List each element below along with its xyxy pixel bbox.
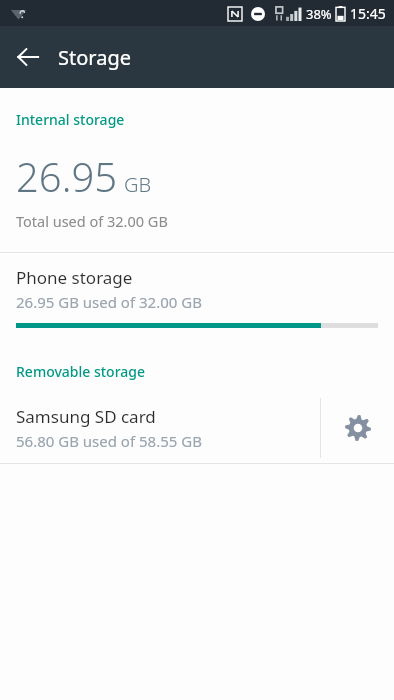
staticText: 26.95 GB used of 32.00 GB (16, 292, 202, 312)
staticText: 15:45 (350, 4, 386, 23)
staticText: Samsung SD card (16, 405, 156, 428)
button[interactable]: Settings (321, 393, 394, 463)
button[interactable]: Phone storage (0, 253, 394, 340)
staticText: 56.80 GB used of 58.55 GB (16, 431, 202, 451)
staticText: Removable storage (16, 362, 146, 381)
staticText: Internal storage (16, 110, 125, 129)
staticText: Phone storage (16, 266, 133, 289)
staticText: Storage (58, 44, 131, 71)
staticText: 26.95 (16, 149, 118, 203)
staticText: Total used of 32.00 GB (16, 211, 168, 231)
staticText: 38% (306, 5, 332, 23)
button[interactable]: Back (0, 29, 56, 85)
staticText: GB (124, 171, 152, 198)
button[interactable]: Samsung SD card (0, 393, 320, 463)
